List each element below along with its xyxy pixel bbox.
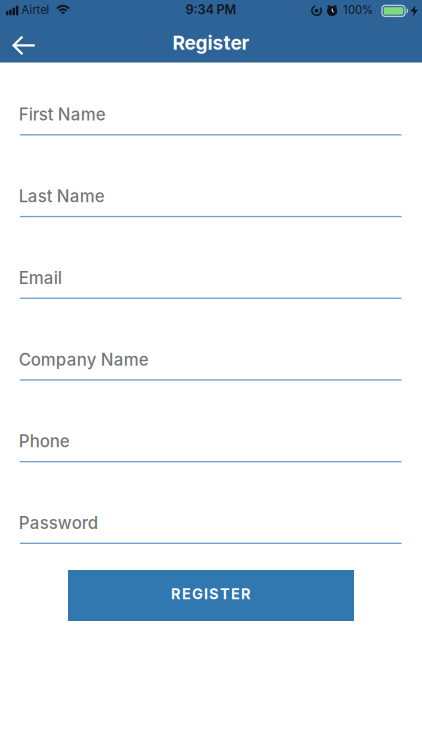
button[interactable]: First Name	[20, 89, 402, 136]
staticText: Last Name	[19, 186, 105, 206]
button[interactable]: Password	[20, 497, 402, 544]
staticText: Phone	[19, 431, 70, 451]
staticText: REGISTER	[171, 585, 251, 603]
staticText: 100%	[343, 3, 373, 17]
staticText: 9:34 PM	[185, 2, 236, 17]
staticText: Company Name	[19, 349, 149, 370]
staticText: Email	[19, 268, 62, 288]
button[interactable]: Last Name	[20, 170, 402, 218]
button[interactable]: Back	[4, 27, 44, 63]
staticText: Airtel	[21, 3, 49, 17]
button[interactable]: Company Name	[20, 334, 402, 381]
staticText: Register	[172, 31, 249, 54]
staticText: Password	[19, 513, 98, 533]
button[interactable]: Email	[20, 252, 402, 299]
button[interactable]: REGISTER	[68, 570, 354, 621]
staticText: First Name	[19, 104, 106, 125]
button[interactable]: Phone	[20, 415, 402, 463]
